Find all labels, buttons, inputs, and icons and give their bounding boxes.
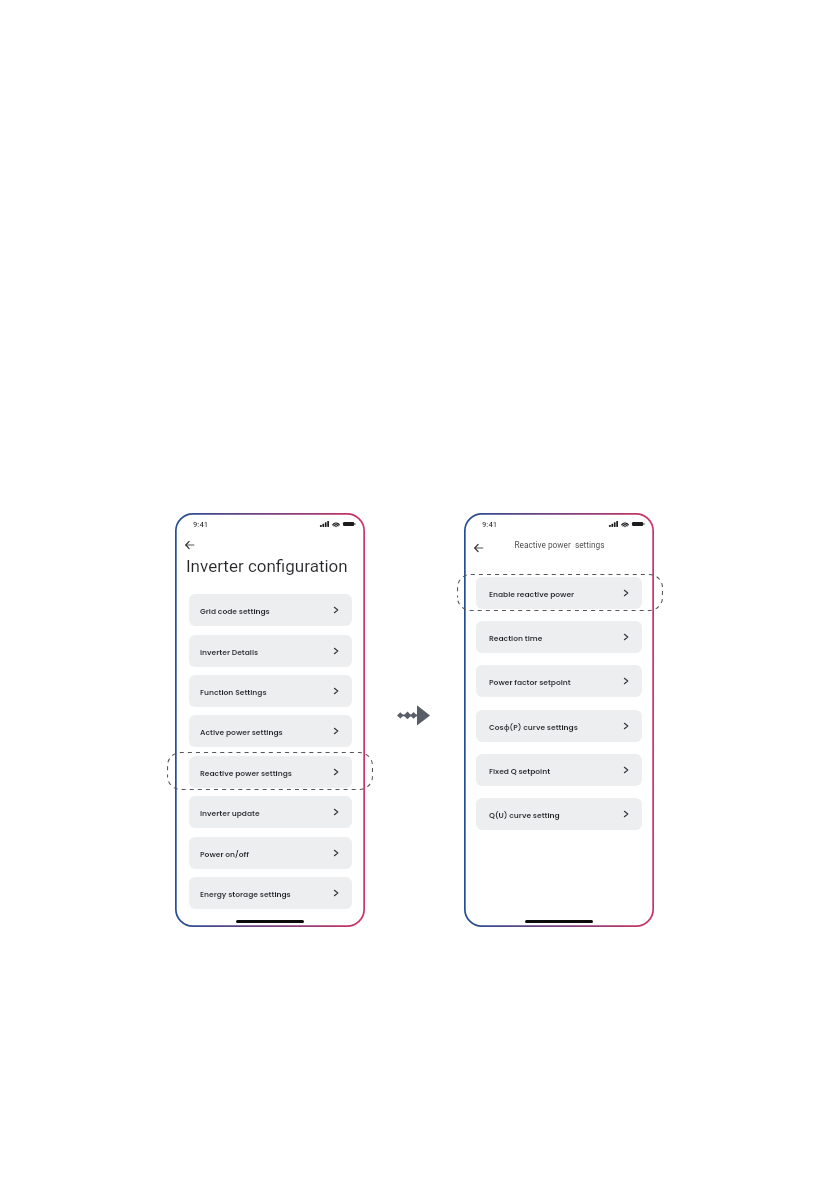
button[interactable]: Inverter update [189,796,352,828]
staticText: 9:41 [482,520,498,529]
staticText: Inverter configuration [186,556,348,576]
button[interactable]: Active power settings [189,715,352,747]
staticText: Power factor setpoint [489,677,571,688]
staticText: Q(U) curve setting [489,810,560,821]
staticText: Reactive power settings [200,768,292,779]
button[interactable]: Energy storage settings [189,877,352,909]
staticText: Enable reactive power [489,589,575,600]
button[interactable]: Reaction time [476,621,642,653]
staticText: Reaction time [489,633,543,644]
staticText: Energy storage settings [200,889,291,900]
staticText: Reactive power settings [514,540,605,550]
button[interactable]: Power factor setpoint [476,665,642,697]
button[interactable]: Power on/off [189,837,352,869]
button[interactable]: Back [472,541,485,554]
button[interactable]: Back [183,538,196,551]
staticText: Cosϕ(P) curve settings [489,722,578,733]
button[interactable]: Reactive power settings [189,756,352,788]
staticText: Fixed Q setpoint [489,766,551,777]
button[interactable]: Inverter Details [189,635,352,667]
staticText: 9:41 [193,520,209,529]
staticText: Power on/off [200,849,249,860]
button[interactable]: Cosϕ(P) curve settings [476,710,642,742]
staticText: Active power settings [200,727,283,738]
staticText: Function Settings [200,687,267,698]
button[interactable]: Function Settings [189,675,352,707]
button[interactable]: Q(U) curve setting [476,798,642,830]
button[interactable]: Enable reactive power [476,577,642,609]
staticText: Inverter update [200,808,260,819]
staticText: Grid code settings [200,606,270,617]
staticText: Inverter Details [200,647,259,658]
button[interactable]: Grid code settings [189,594,352,626]
button[interactable]: Fixed Q setpoint [476,754,642,786]
